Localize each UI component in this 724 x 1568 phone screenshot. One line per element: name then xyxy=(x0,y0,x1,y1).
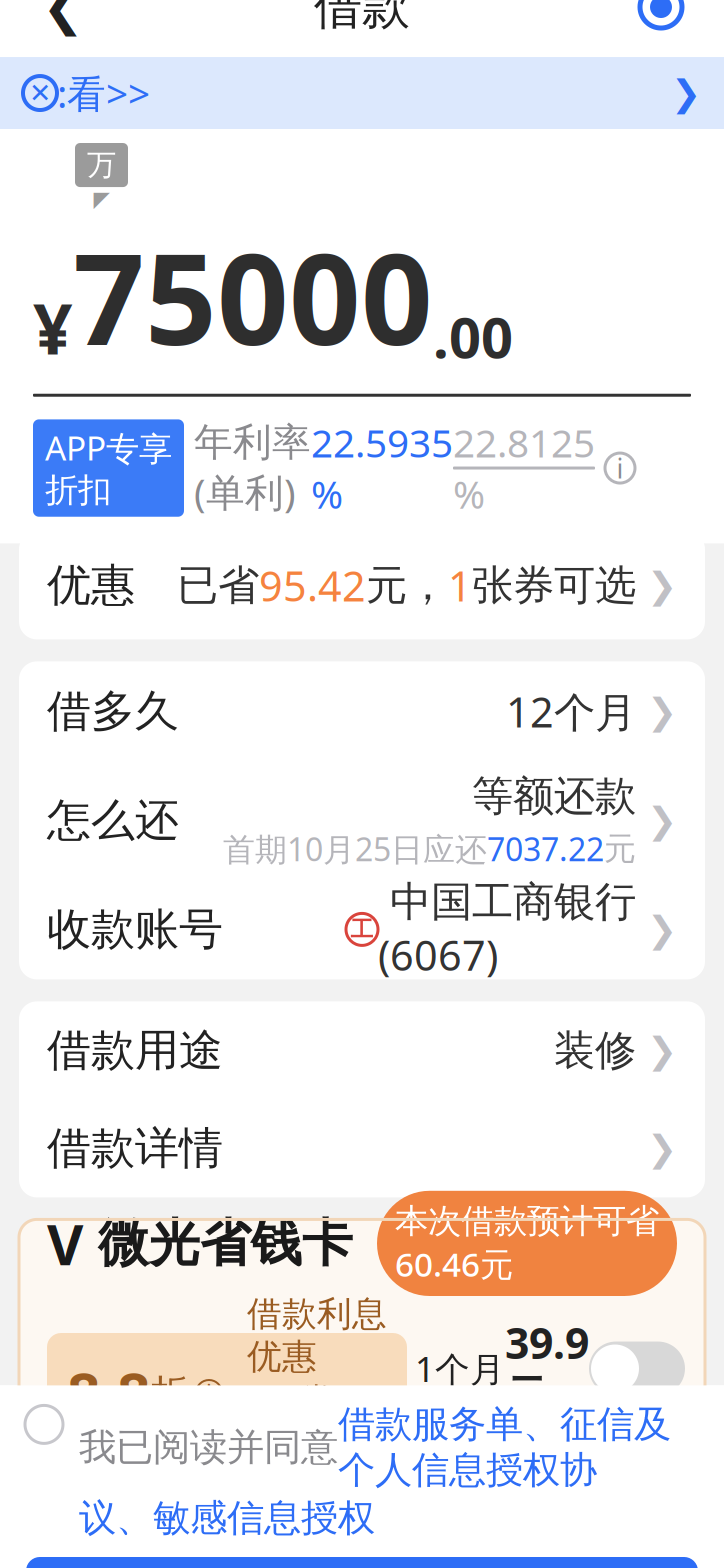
staticText: ¥ xyxy=(33,282,73,374)
staticText: 7037.22 xyxy=(487,827,604,870)
button[interactable]: ✕ xyxy=(0,57,724,129)
staticText: 借款用途 xyxy=(47,1023,223,1077)
staticText: 收款账号 xyxy=(47,902,223,956)
staticText: 首期10月25日应还 xyxy=(223,827,487,870)
staticText: 已省 xyxy=(177,560,259,611)
staticText: ❯ xyxy=(671,73,701,113)
staticText: 折 xyxy=(151,1370,188,1416)
staticText: 8.8 xyxy=(67,1354,151,1432)
staticText: 1 xyxy=(448,558,472,613)
staticText: 万 xyxy=(87,147,116,183)
button[interactable]: 借款详情 xyxy=(19,1099,705,1197)
staticText: ◤ xyxy=(93,187,109,211)
staticText: 元， xyxy=(366,560,448,611)
staticText: 微光省钱卡 xyxy=(83,1212,353,1274)
staticText: 借款利息优惠 xyxy=(247,1293,387,1378)
staticText: 39.9元 xyxy=(505,1314,589,1423)
staticText: 元 xyxy=(604,829,636,868)
button[interactable]: 下一步 xyxy=(26,1557,698,1568)
staticText: ❯ xyxy=(636,565,677,606)
staticText: 到期自动续费 xyxy=(451,1431,649,1472)
staticText: 工 xyxy=(350,915,373,943)
staticText: 借款服务单、征信及个人信息授权协 xyxy=(338,1401,671,1493)
button[interactable]: 借多久 xyxy=(19,661,705,761)
staticText: 张券可选 xyxy=(472,560,636,611)
staticText: ✕ xyxy=(29,78,51,108)
button[interactable]: Customer service xyxy=(617,0,705,51)
staticText: 议、敏感信息授权 xyxy=(79,1495,375,1541)
staticText: 借款 xyxy=(314,0,410,37)
staticText: ❯ xyxy=(636,691,677,732)
staticText: ❮ xyxy=(42,0,84,36)
staticText: ❯ xyxy=(636,800,677,841)
staticText: 本次借款可用 xyxy=(247,1424,387,1493)
staticText: ❯ xyxy=(647,1128,677,1169)
staticText: 等额还款 xyxy=(472,771,636,822)
staticText: 年利率(单利) xyxy=(194,419,311,517)
staticText: ❯ xyxy=(636,909,677,950)
staticText: 75000 xyxy=(73,213,433,380)
staticText: 借多久 xyxy=(47,684,179,738)
staticText: :看>> xyxy=(57,67,150,119)
button[interactable]: 收款账号 xyxy=(19,879,705,979)
staticText: 优惠 xyxy=(47,558,135,612)
button[interactable]: Back xyxy=(19,0,107,51)
staticText: 我已阅读并同意 xyxy=(79,1424,338,1470)
staticText: 装修 xyxy=(554,1025,636,1076)
staticText: 12个月 xyxy=(506,684,636,739)
button[interactable]: 怎么还 xyxy=(19,761,705,879)
staticText: .00 xyxy=(433,299,513,374)
button[interactable]: 借款用途 xyxy=(19,1001,705,1099)
staticText: 95.42 xyxy=(259,558,366,613)
staticText: 借款详情 xyxy=(47,1121,223,1175)
button[interactable]: Auto renew toggle xyxy=(589,1341,685,1395)
staticText: ❯ xyxy=(636,1030,677,1071)
staticText: i xyxy=(616,450,623,486)
staticText: 本次借款预计可省60.46元 xyxy=(395,1201,659,1286)
button[interactable]: 我已阅读并同意 xyxy=(0,1385,724,1541)
staticText: APP专享折扣 xyxy=(45,425,172,511)
button[interactable]: 优惠 xyxy=(19,531,705,639)
staticText: i xyxy=(206,1378,212,1408)
staticText: 1个月 xyxy=(415,1345,505,1391)
staticText: V xyxy=(47,1206,83,1281)
staticText: 22.5935% xyxy=(311,417,453,519)
staticText: 22.8125% xyxy=(453,417,595,519)
staticText: 中国工商银行(6067) xyxy=(378,877,636,982)
staticText: 券 xyxy=(299,1380,334,1422)
staticText: 怎么还 xyxy=(47,793,179,847)
